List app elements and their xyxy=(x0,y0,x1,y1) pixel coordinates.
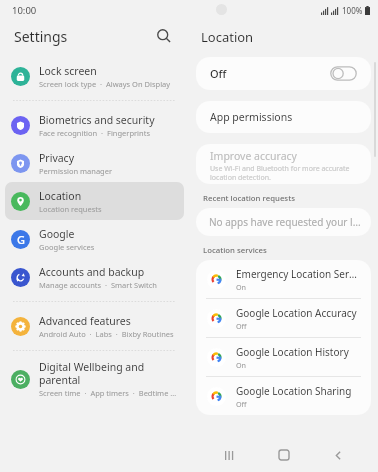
button[interactable]: Home xyxy=(269,440,299,470)
staticText: Location services xyxy=(203,245,267,256)
staticText: Off xyxy=(210,66,227,81)
button[interactable]: Privacy xyxy=(5,144,184,182)
staticText: Digital Wellbeing and parental controls xyxy=(39,360,178,387)
button[interactable]: Improve accuracy xyxy=(196,144,371,184)
staticText: Manage accounts · Smart Switch xyxy=(39,280,157,290)
button[interactable]: Emergency Location Service xyxy=(196,260,371,298)
button[interactable]: Google Location Sharing xyxy=(196,377,371,415)
staticText: App permissions xyxy=(210,110,293,124)
staticText: 100% xyxy=(342,5,363,16)
button[interactable]: Back xyxy=(323,440,353,470)
button[interactable]: Search settings xyxy=(151,23,177,49)
button[interactable]: Google Location History xyxy=(196,338,371,376)
staticText: Privacy xyxy=(39,151,75,165)
staticText: Settings xyxy=(14,27,68,46)
staticText: Android Auto · Labs · Bixby Routines xyxy=(39,329,174,339)
button[interactable]: Lock screen xyxy=(5,57,184,95)
staticText: Emergency Location Service xyxy=(236,267,361,281)
staticText: Google Location Sharing xyxy=(236,384,352,398)
button[interactable]: Recents xyxy=(214,440,244,470)
staticText: Google services xyxy=(39,242,95,252)
staticText: Location xyxy=(201,28,254,46)
staticText: Location requests xyxy=(39,204,102,214)
button[interactable]: Location toggle, off xyxy=(330,66,357,81)
staticText: Recent location requests xyxy=(203,193,295,204)
button[interactable]: Google Location Accuracy xyxy=(196,299,371,337)
staticText: Google xyxy=(39,227,75,241)
staticText: Google Location Accuracy xyxy=(236,306,357,320)
staticText: Permission manager xyxy=(39,166,113,176)
button[interactable]: Digital Wellbeing and parental controls xyxy=(5,356,184,402)
button[interactable]: Off xyxy=(196,57,371,90)
staticText: Accounts and backup xyxy=(39,265,145,279)
staticText: Screen time · App timers · Bedtime mode xyxy=(39,388,178,398)
button[interactable]: App permissions xyxy=(196,101,371,133)
staticText: Off xyxy=(236,399,247,409)
button[interactable]: Biometrics and security xyxy=(5,106,184,144)
staticText: 10:00 xyxy=(12,4,37,17)
staticText: Location xyxy=(39,189,82,203)
staticText: Improve accuracy xyxy=(210,149,297,163)
button[interactable]: Location xyxy=(5,182,184,220)
staticText: Screen lock type · Always On Display xyxy=(39,79,171,89)
button[interactable]: Advanced features xyxy=(5,307,184,345)
button[interactable]: Accounts and backup xyxy=(5,258,184,296)
staticText: Use Wi-Fi and Bluetooth for more accurat… xyxy=(210,164,350,182)
staticText: Off xyxy=(236,321,247,331)
staticText: G xyxy=(17,232,25,247)
staticText: Lock screen xyxy=(39,64,97,78)
staticText: Google Location History xyxy=(236,345,349,359)
staticText: No apps have requested your locat.. xyxy=(209,215,363,229)
staticText: Biometrics and security xyxy=(39,113,155,127)
staticText: On xyxy=(236,360,247,370)
staticText: Face recognition · Fingerprints xyxy=(39,128,150,138)
button[interactable]: G xyxy=(5,220,184,258)
staticText: Advanced features xyxy=(39,314,131,328)
staticText: On xyxy=(236,282,247,292)
